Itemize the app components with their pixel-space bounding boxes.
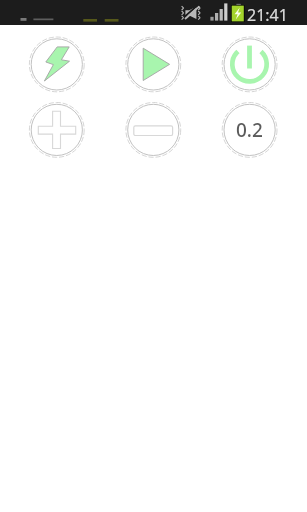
button[interactable]: Flash (29, 37, 84, 92)
staticText: 21:41 (247, 4, 288, 26)
button[interactable]: Increase (29, 102, 84, 157)
button[interactable]: 0.2 (222, 102, 277, 157)
staticText: 0.2 (236, 117, 263, 143)
button[interactable]: Power (222, 37, 277, 92)
button[interactable]: Play (126, 37, 181, 92)
button[interactable]: Decrease (126, 102, 181, 157)
